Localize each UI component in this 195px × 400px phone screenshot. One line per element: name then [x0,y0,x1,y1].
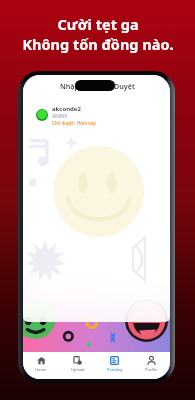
staticText: akconde2 [52,105,81,113]
staticText: Nhập [60,81,79,91]
staticText: Profile [145,367,158,372]
staticText: Upload [71,367,85,372]
staticText: ANIME [52,113,68,120]
staticText: Cười tẹt ga [57,14,139,34]
button[interactable]: Home [23,352,59,379]
button[interactable]: akconde2 [23,104,170,126]
button[interactable]: Duyệt [101,79,147,92]
staticText: Không tốn đồng nào. [22,34,174,54]
staticText: Duyệt [114,81,135,91]
staticText: Chờ duyệt · Hôm nay [52,120,96,126]
button[interactable]: Profile [133,352,170,379]
button[interactable]: Upload [59,352,96,379]
staticText: Home [35,367,47,372]
staticText: Pending [107,367,123,372]
button[interactable]: Nhập [46,79,92,92]
button[interactable]: Pending [96,352,133,379]
